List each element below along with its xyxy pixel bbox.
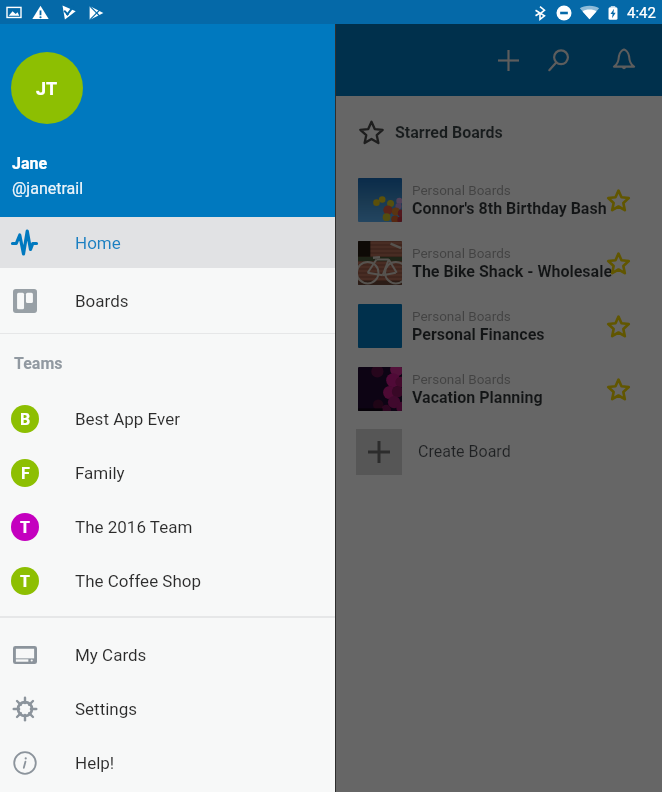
button[interactable]: Personal Boards	[336, 357, 662, 420]
button[interactable]: Star	[598, 180, 638, 220]
staticText: Personal Boards	[412, 371, 511, 387]
button[interactable]: My Cards	[0, 628, 336, 682]
button[interactable]: T	[0, 500, 336, 554]
staticText: The 2016 Team	[75, 517, 193, 537]
staticText: Settings	[75, 699, 138, 719]
button[interactable]: Create Board	[336, 420, 662, 483]
staticText: B	[20, 410, 31, 429]
button[interactable]: B	[0, 392, 336, 446]
staticText: Personal Boards	[412, 308, 511, 324]
button[interactable]: Settings	[0, 682, 336, 736]
staticText: T	[20, 572, 30, 591]
staticText: Personal Boards	[412, 245, 511, 261]
staticText: Boards	[75, 291, 129, 311]
staticText: Starred Boards	[395, 123, 503, 142]
button[interactable]: Star	[598, 306, 638, 346]
staticText: Home	[75, 233, 121, 253]
button[interactable]: Notifications	[600, 36, 648, 84]
button[interactable]: Personal Boards	[336, 294, 662, 357]
staticText: Vacation Planning	[412, 388, 543, 407]
staticText: @janetrail	[12, 179, 84, 198]
staticText: T	[20, 518, 30, 537]
staticText: Teams	[14, 354, 63, 373]
staticText: Jane	[12, 154, 48, 173]
button[interactable]: T	[0, 554, 336, 608]
button[interactable]: Personal Boards	[336, 231, 662, 294]
staticText: Help!	[75, 753, 115, 773]
staticText: The Bike Shack - Wholesale	[412, 262, 613, 281]
button[interactable]: Home	[0, 217, 336, 268]
button[interactable]: Star	[598, 369, 638, 409]
button[interactable]: F	[0, 446, 336, 500]
staticText: Best App Ever	[75, 409, 180, 429]
staticText: F	[21, 464, 30, 483]
staticText: Family	[75, 463, 125, 483]
staticText: Connor's 8th Birthday Bash	[412, 199, 607, 218]
staticText: Personal Boards	[412, 182, 511, 198]
staticText: My Cards	[75, 645, 147, 665]
staticText: The Coffee Shop	[75, 571, 202, 591]
staticText: Create Board	[418, 442, 511, 461]
button[interactable]: Personal Boards	[336, 168, 662, 231]
staticText: 4:42	[627, 4, 656, 22]
button[interactable]: Star	[598, 243, 638, 283]
button[interactable]: Search	[534, 36, 582, 84]
staticText: Personal Finances	[412, 325, 545, 344]
button[interactable]: Boards	[0, 268, 336, 333]
staticText: JT	[36, 78, 58, 99]
button[interactable]: Add	[484, 36, 532, 84]
button[interactable]: Help!	[0, 736, 336, 790]
